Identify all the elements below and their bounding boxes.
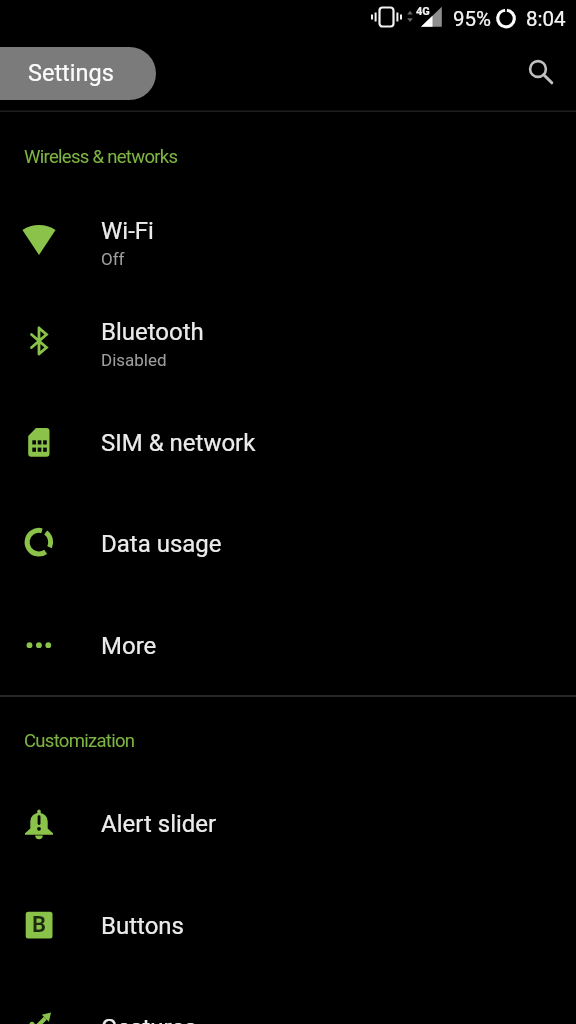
staticText: Alert slider (101, 810, 217, 838)
button[interactable]: Gestures (0, 977, 576, 1024)
staticText: Buttons (101, 912, 184, 940)
staticText: Off (101, 249, 125, 269)
staticText: Customization (24, 730, 135, 752)
staticText: 95% (453, 7, 492, 31)
staticText: Settings (28, 59, 114, 87)
button[interactable]: Bluetooth (0, 290, 576, 392)
staticText: Disabled (101, 350, 167, 370)
staticText: 8:04 (526, 7, 566, 31)
button[interactable]: More (0, 595, 576, 697)
button[interactable]: B (0, 875, 576, 977)
staticText: More (101, 632, 157, 660)
button[interactable]: Alert slider (0, 773, 576, 875)
button[interactable] (520, 51, 556, 87)
staticText: SIM & network (101, 429, 256, 457)
staticText: Wireless & networks (24, 146, 178, 168)
staticText: Bluetooth (101, 318, 204, 346)
button[interactable]: Wi-Fi (0, 189, 576, 291)
staticText: Gestures (101, 1014, 197, 1024)
button[interactable]: Settings (0, 47, 156, 100)
staticText: Data usage (101, 530, 222, 558)
staticText: 4G (416, 5, 430, 18)
staticText: B (32, 912, 47, 938)
staticText: Wi-Fi (101, 217, 154, 245)
button[interactable]: SIM & network (0, 392, 576, 494)
button[interactable]: Data usage (0, 493, 576, 595)
